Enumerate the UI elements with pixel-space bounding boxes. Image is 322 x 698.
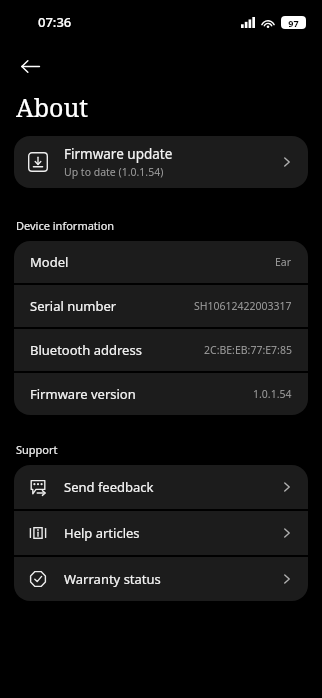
staticText: Help articles: [64, 524, 280, 542]
button[interactable]: Bluetooth address: [14, 329, 308, 371]
staticText: SH10612422003317: [194, 299, 292, 313]
staticText: Send feedback: [64, 478, 280, 496]
staticText: Bluetooth address: [30, 341, 204, 359]
button[interactable]: Model: [14, 241, 308, 283]
button[interactable]: Send feedback: [14, 465, 308, 509]
button[interactable]: Serial number: [14, 285, 308, 327]
staticText: Serial number: [30, 297, 194, 315]
staticText: Up to date (1.0.1.54): [64, 165, 164, 179]
staticText: Firmware update: [64, 145, 173, 163]
staticText: Ear: [275, 255, 292, 269]
staticText: 07:36: [38, 13, 72, 31]
staticText: 1.0.1.54: [253, 387, 292, 401]
staticText: Firmware version: [30, 385, 253, 403]
button[interactable]: Firmware version: [14, 373, 308, 415]
staticText: 97: [288, 17, 299, 29]
staticText: Warranty status: [64, 570, 280, 588]
staticText: Support: [16, 442, 58, 457]
button[interactable]: Back: [8, 44, 52, 88]
staticText: Model: [30, 253, 275, 271]
button[interactable]: Warranty status: [14, 557, 308, 601]
button[interactable]: Help articles: [14, 511, 308, 555]
button[interactable]: Firmware update: [14, 136, 308, 188]
staticText: About: [16, 90, 89, 124]
staticText: 2C:BE:EB:77:E7:85: [204, 343, 292, 357]
staticText: Device information: [16, 218, 115, 233]
